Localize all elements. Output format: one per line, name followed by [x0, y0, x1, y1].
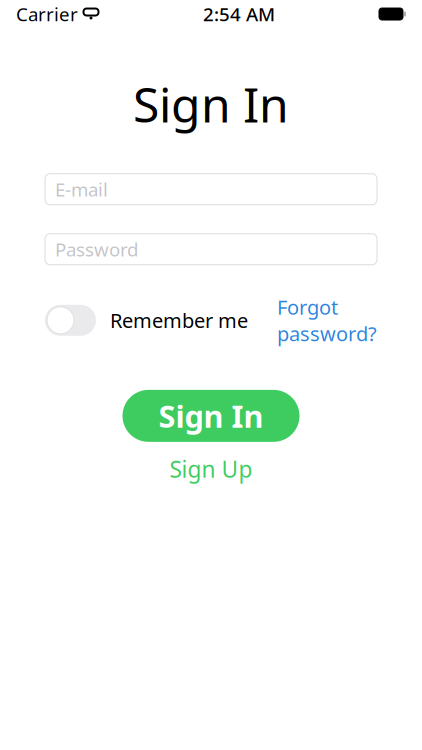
staticText: Remember me — [110, 307, 248, 334]
staticText: Sign In — [133, 72, 289, 136]
staticText: 2:54 AM — [203, 2, 275, 26]
staticText: E-mail — [55, 177, 108, 202]
staticText: Password — [55, 237, 138, 262]
button[interactable]: Remember me — [45, 305, 248, 336]
button[interactable]: Sign Up — [131, 454, 291, 484]
staticText: Sign Up — [169, 454, 252, 484]
button[interactable]: Forgot password? — [277, 294, 377, 347]
staticText: Sign In — [158, 395, 263, 436]
staticText: Carrier — [16, 2, 78, 26]
button[interactable]: Sign In — [122, 390, 299, 442]
staticText: Forgot password? — [277, 294, 377, 347]
